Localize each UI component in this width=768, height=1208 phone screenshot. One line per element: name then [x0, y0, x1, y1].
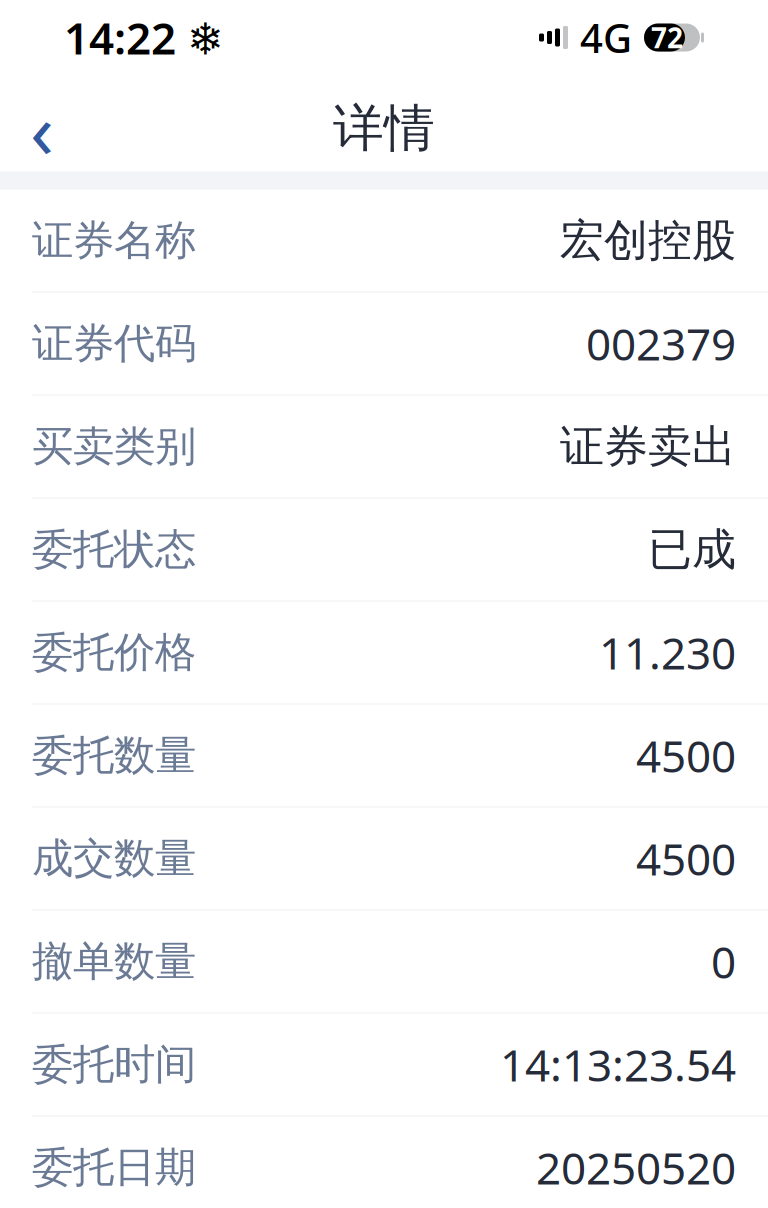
staticText: ‹ [30, 77, 54, 180]
staticText: 委托时间 [32, 1039, 196, 1090]
staticText: 4G [580, 11, 632, 64]
staticText: 002379 [586, 314, 736, 373]
staticText: 72 [651, 19, 683, 56]
staticText: 14:13:23.54 [500, 1035, 736, 1094]
staticText: 撤单数量 [32, 936, 196, 987]
staticText: 11.230 [599, 623, 736, 682]
staticText: 委托数量 [32, 730, 196, 781]
staticText: 14:22 ❄ [64, 8, 224, 67]
staticText: 宏创控股 [560, 213, 736, 267]
button[interactable]: Back [0, 85, 84, 171]
staticText: 详情 [333, 97, 435, 160]
staticText: 买卖类别 [32, 421, 196, 472]
staticText: 委托日期 [32, 1142, 196, 1193]
staticText: 委托价格 [32, 627, 196, 678]
staticText: 委托状态 [32, 524, 196, 575]
staticText: 已成 [648, 522, 736, 576]
staticText: 4500 [636, 829, 736, 888]
staticText: 0 [711, 932, 736, 991]
staticText: 成交数量 [32, 833, 196, 884]
staticText: 证券卖出 [560, 419, 736, 473]
staticText: 20250520 [536, 1138, 736, 1197]
staticText: 4500 [636, 726, 736, 785]
staticText: 证券名称 [32, 215, 196, 266]
staticText: 证券代码 [32, 318, 196, 369]
